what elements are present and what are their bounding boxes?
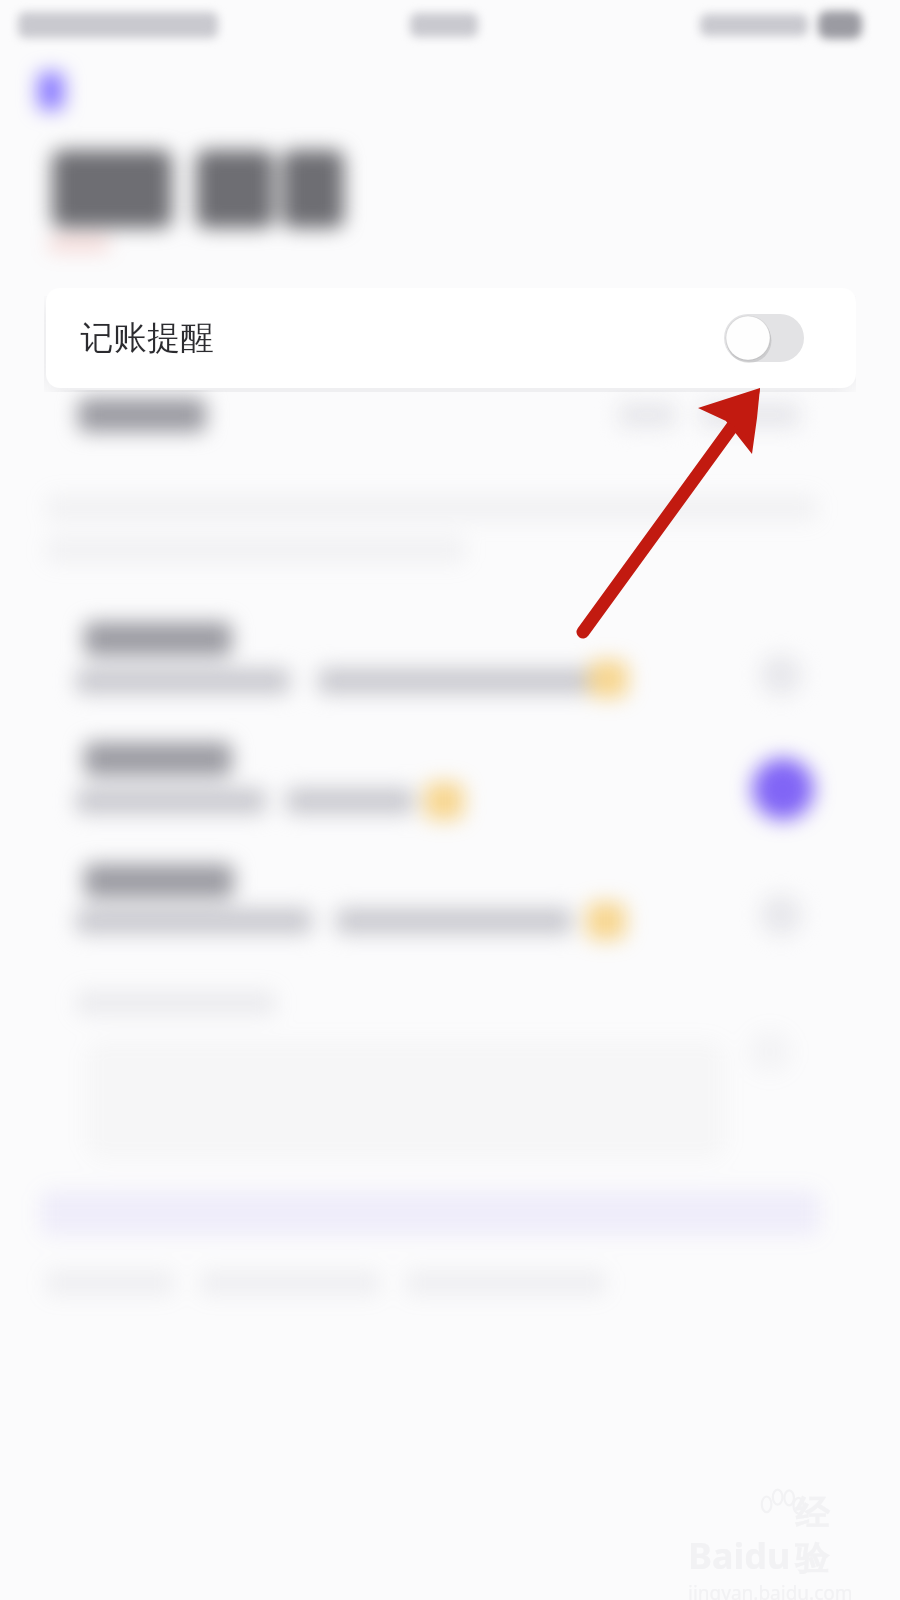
button[interactable]: 记账提醒开关，已关闭 bbox=[724, 314, 804, 362]
button[interactable]: 记账提醒 bbox=[46, 288, 856, 388]
staticText: jingyan.baidu.com bbox=[688, 1580, 860, 1600]
staticText: Baidu bbox=[688, 1531, 791, 1580]
staticText: 记账提醒 bbox=[80, 317, 214, 359]
staticText: 经验 bbox=[795, 1492, 860, 1580]
